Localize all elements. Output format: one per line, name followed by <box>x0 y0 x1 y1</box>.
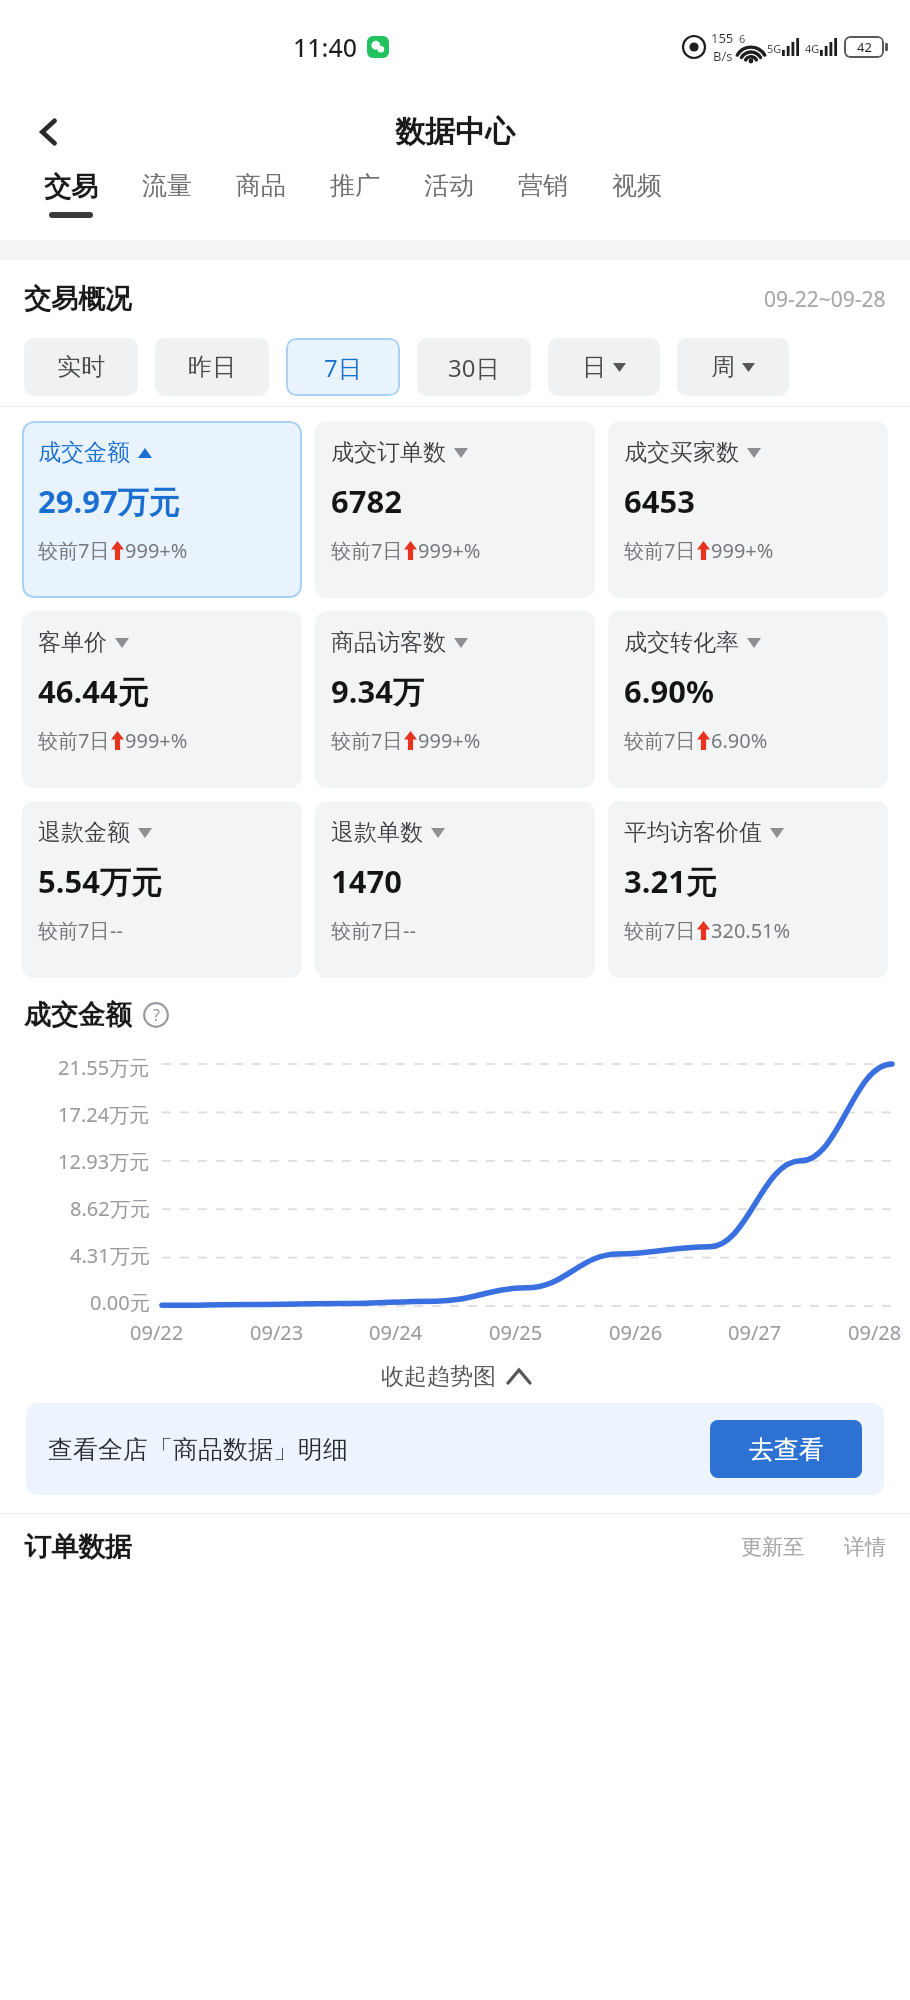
staticText: 42 <box>857 38 872 56</box>
staticText: 较前7日 <box>624 917 696 944</box>
staticText: 999+% <box>711 537 774 564</box>
staticText: 7日 <box>324 351 362 384</box>
staticText: 9.34万 <box>331 670 424 712</box>
staticText: 较前7日 <box>624 537 696 564</box>
staticText: -- <box>403 917 416 944</box>
staticText: 推广 <box>330 170 380 201</box>
button[interactable]: 成交订单数 <box>315 421 595 598</box>
button[interactable]: 流量 <box>120 170 214 201</box>
staticText: 订单数据 <box>24 1530 132 1564</box>
staticText: 09/24 <box>369 1319 423 1346</box>
staticText: 155 <box>711 29 734 47</box>
staticText: 活动 <box>424 170 474 201</box>
staticText: 4G <box>805 41 820 56</box>
staticText: 较前7日 <box>38 537 110 564</box>
button[interactable]: 成交金额 <box>22 421 302 598</box>
staticText: 999+% <box>418 537 481 564</box>
button[interactable]: 推广 <box>308 170 402 201</box>
staticText: 46.44元 <box>38 670 149 712</box>
staticText: B/s <box>713 47 733 65</box>
staticText: 30日 <box>448 351 500 384</box>
staticText: 退款金额 <box>38 818 130 847</box>
staticText: 6782 <box>331 480 402 522</box>
staticText: 5.54万元 <box>38 860 162 902</box>
staticText: 成交买家数 <box>624 438 739 467</box>
button[interactable]: 营销 <box>496 170 590 201</box>
staticText: 999+% <box>125 727 188 754</box>
button[interactable]: 活动 <box>402 170 496 201</box>
staticText: 较前7日 <box>331 917 403 944</box>
staticText: 成交金额 <box>38 438 130 467</box>
staticText: 11:40 <box>293 30 358 64</box>
staticText: 数据中心 <box>395 113 515 151</box>
staticText: 成交金额 <box>24 998 132 1032</box>
staticText: 6.90% <box>624 670 714 712</box>
button[interactable]: 退款单数 <box>315 801 595 978</box>
staticText: 实时 <box>57 352 105 382</box>
staticText: 较前7日 <box>38 727 110 754</box>
button[interactable]: 视频 <box>590 170 684 201</box>
staticText: 320.51% <box>711 917 791 944</box>
staticText: 29.97万元 <box>38 480 180 522</box>
staticText: 商品访客数 <box>331 628 446 657</box>
staticText: 视频 <box>612 170 662 201</box>
staticText: 6.90% <box>711 727 768 754</box>
button[interactable]: 7日 <box>286 338 400 396</box>
button[interactable]: 收起趋势图 <box>0 1362 910 1391</box>
button[interactable]: 退款金额 <box>22 801 302 978</box>
staticText: 0.00元 <box>90 1289 150 1316</box>
button[interactable]: 平均访客价值 <box>608 801 888 978</box>
button[interactable]: 30日 <box>417 338 531 396</box>
button[interactable]: 实时 <box>24 338 138 396</box>
staticText: 周 <box>711 352 735 382</box>
staticText: 09/26 <box>609 1319 663 1346</box>
staticText: 商品 <box>236 170 286 201</box>
staticText: 12.93万元 <box>58 1148 150 1175</box>
staticText: 去查看 <box>749 1434 824 1465</box>
staticText: 流量 <box>142 170 192 201</box>
staticText: 成交转化率 <box>624 628 739 657</box>
staticText: 平均访客价值 <box>624 818 762 847</box>
staticText: 999+% <box>125 537 188 564</box>
staticText: 1470 <box>331 860 402 902</box>
button[interactable]: Back <box>22 105 76 159</box>
staticText: 查看全店「商品数据」明细 <box>48 1434 348 1465</box>
staticText: 详情 <box>844 1534 886 1560</box>
button[interactable]: 交易 <box>22 170 120 218</box>
staticText: 09/25 <box>489 1319 543 1346</box>
staticText: 退款单数 <box>331 818 423 847</box>
staticText: 09/23 <box>250 1319 304 1346</box>
staticText: -- <box>110 917 123 944</box>
button[interactable]: Info <box>142 1001 170 1029</box>
staticText: 成交订单数 <box>331 438 446 467</box>
staticText: 09-22~09-28 <box>764 285 886 314</box>
button[interactable]: 周 <box>677 338 789 396</box>
staticText: 6 <box>739 31 746 46</box>
staticText: 交易 <box>44 170 98 204</box>
button[interactable]: 查看全店「商品数据」明细 <box>26 1403 884 1495</box>
staticText: 3.21元 <box>624 860 717 902</box>
staticText: 较前7日 <box>331 537 403 564</box>
button[interactable]: 商品 <box>214 170 308 201</box>
staticText: 较前7日 <box>331 727 403 754</box>
staticText: 999+% <box>418 727 481 754</box>
staticText: 4.31万元 <box>70 1242 150 1269</box>
staticText: 5G <box>767 41 782 56</box>
staticText: 交易概况 <box>24 282 132 316</box>
staticText: 8.62万元 <box>70 1195 150 1222</box>
staticText: 09/28 <box>848 1319 902 1346</box>
button[interactable]: 昨日 <box>155 338 269 396</box>
staticText: 较前7日 <box>38 917 110 944</box>
button[interactable]: 商品访客数 <box>315 611 595 788</box>
button[interactable]: 客单价 <box>22 611 302 788</box>
button[interactable]: 日 <box>548 338 660 396</box>
staticText: 6453 <box>624 480 695 522</box>
staticText: ? <box>153 1004 160 1026</box>
staticText: 更新至 <box>741 1534 804 1560</box>
button[interactable]: 成交转化率 <box>608 611 888 788</box>
button[interactable]: 去查看 <box>710 1420 862 1478</box>
staticText: 收起趋势图 <box>381 1362 496 1391</box>
staticText: 21.55万元 <box>58 1054 150 1081</box>
button[interactable]: 成交买家数 <box>608 421 888 598</box>
staticText: 09/22 <box>130 1319 184 1346</box>
